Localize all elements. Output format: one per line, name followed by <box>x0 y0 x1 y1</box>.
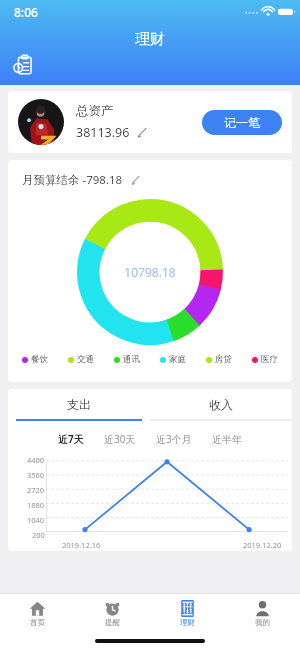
staticText: 总资产 <box>76 103 114 119</box>
button[interactable]: 首页 <box>0 594 75 632</box>
staticText: 200 <box>32 530 45 540</box>
staticText: 收入 <box>209 397 233 412</box>
staticText: 支出 <box>67 397 91 412</box>
staticText: 10798.18 <box>124 264 176 280</box>
button[interactable]: 医疗 <box>252 354 278 365</box>
staticText: 餐饮 <box>31 354 48 365</box>
button[interactable]: 近半年 <box>210 431 244 448</box>
button[interactable]: 理财 <box>150 594 225 632</box>
staticText: 2019.12.20 <box>243 540 282 550</box>
staticText: 房贷 <box>215 354 232 365</box>
button[interactable]: 房贷 <box>206 354 232 365</box>
button[interactable]: 收入 <box>150 389 292 419</box>
staticText: 近3个月 <box>156 432 192 446</box>
staticText: 4400 <box>27 455 45 465</box>
button[interactable]: 记一笔 <box>202 110 282 135</box>
staticText: 通讯 <box>123 354 140 365</box>
button[interactable]: 近30天 <box>102 430 138 448</box>
staticText: 近半年 <box>212 433 242 446</box>
button[interactable]: 我的 <box>225 594 300 632</box>
button[interactable]: 支出 <box>8 389 150 419</box>
staticText: 1880 <box>27 500 45 510</box>
staticText: 月预算结余 -798.18 <box>22 172 123 188</box>
staticText: 交通 <box>77 354 94 365</box>
staticText: 3560 <box>27 470 45 480</box>
staticText: 医疗 <box>261 354 278 365</box>
staticText: 我的 <box>255 618 270 627</box>
staticText: 2019.12.16 <box>62 540 101 550</box>
staticText: 记一笔 <box>224 115 260 130</box>
button[interactable]: 交通 <box>68 354 94 365</box>
button[interactable]: 餐饮 <box>22 354 48 365</box>
button[interactable]: 提醒 <box>75 594 150 632</box>
button[interactable]: 家庭 <box>160 354 186 365</box>
button[interactable]: 编辑总资产 <box>137 127 148 138</box>
staticText: 理财 <box>180 618 195 627</box>
button[interactable]: 近3个月 <box>154 430 194 448</box>
staticText: 理财 <box>135 30 165 49</box>
staticText: 近7天 <box>58 432 84 446</box>
button[interactable]: 头像 <box>18 99 64 145</box>
staticText: 家庭 <box>169 354 186 365</box>
staticText: 近30天 <box>104 432 136 446</box>
button[interactable]: 通讯 <box>114 354 140 365</box>
button[interactable]: 编辑月预算 <box>131 175 141 185</box>
button[interactable]: 账单记录 <box>8 49 38 79</box>
staticText: 首页 <box>30 618 45 627</box>
staticText: 38113.96 <box>76 124 130 141</box>
button[interactable]: 近7天 <box>56 430 86 448</box>
staticText: 8:06 <box>14 4 38 20</box>
staticText: 2720 <box>27 485 45 495</box>
staticText: 1040 <box>27 515 45 525</box>
staticText: 提醒 <box>105 618 120 627</box>
